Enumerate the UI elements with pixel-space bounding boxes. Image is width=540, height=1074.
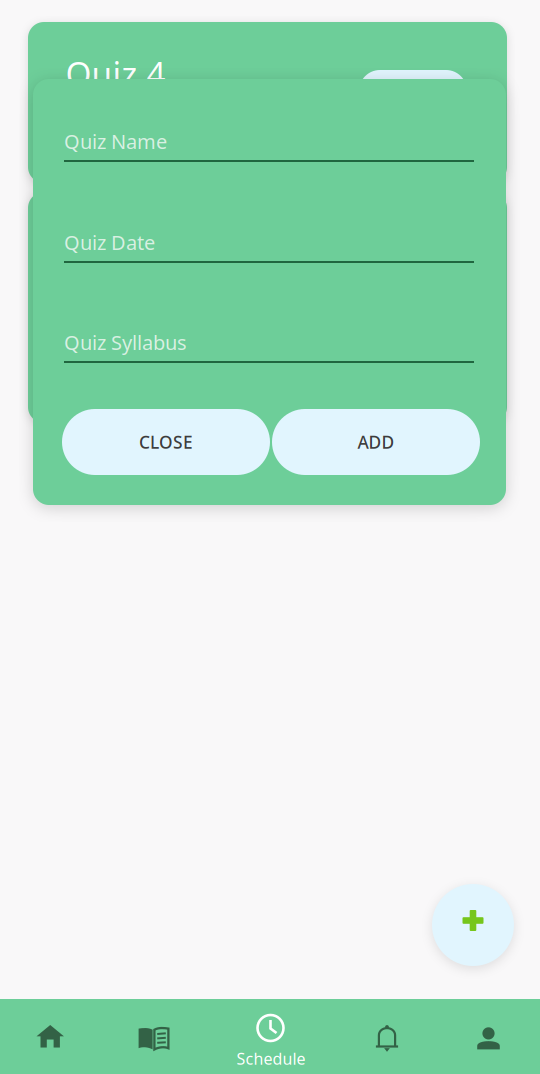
button[interactable]: VIEW [359, 70, 467, 112]
staticText: CLOSE [139, 430, 193, 453]
button[interactable]: CLOSE [62, 409, 270, 475]
button[interactable]: Add quiz [432, 884, 514, 966]
staticText: Quiz Syllabus [64, 329, 187, 356]
button[interactable]: Notifications [336, 999, 438, 1074]
staticText: ADD [357, 430, 394, 453]
button[interactable]: Courses [102, 999, 204, 1074]
button[interactable]: ADD [272, 409, 480, 475]
button[interactable]: Home [0, 999, 102, 1074]
staticText: Quiz 4 [65, 51, 165, 95]
staticText: Schedule [236, 1048, 305, 1069]
staticText: VIEW [391, 249, 434, 272]
button[interactable]: Schedule [204, 999, 336, 1074]
staticText: Quiz Date [64, 229, 155, 256]
staticText: Quiz 3 [65, 221, 165, 265]
button[interactable]: Profile [438, 999, 540, 1074]
button[interactable]: VIEW [359, 240, 467, 282]
staticText: Quiz Name [64, 128, 167, 155]
